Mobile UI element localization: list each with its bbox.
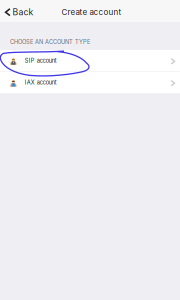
button[interactable]: IAX account xyxy=(0,72,180,93)
staticText: CHOOSE AN ACCOUNT TYPE xyxy=(10,38,90,45)
staticText: IAX account xyxy=(25,79,57,86)
button[interactable]: Back xyxy=(0,1,37,21)
staticText: Create account xyxy=(61,7,121,17)
staticText: SIP account xyxy=(25,57,57,64)
button[interactable]: SIP account xyxy=(0,50,180,71)
staticText: Back xyxy=(12,7,33,17)
